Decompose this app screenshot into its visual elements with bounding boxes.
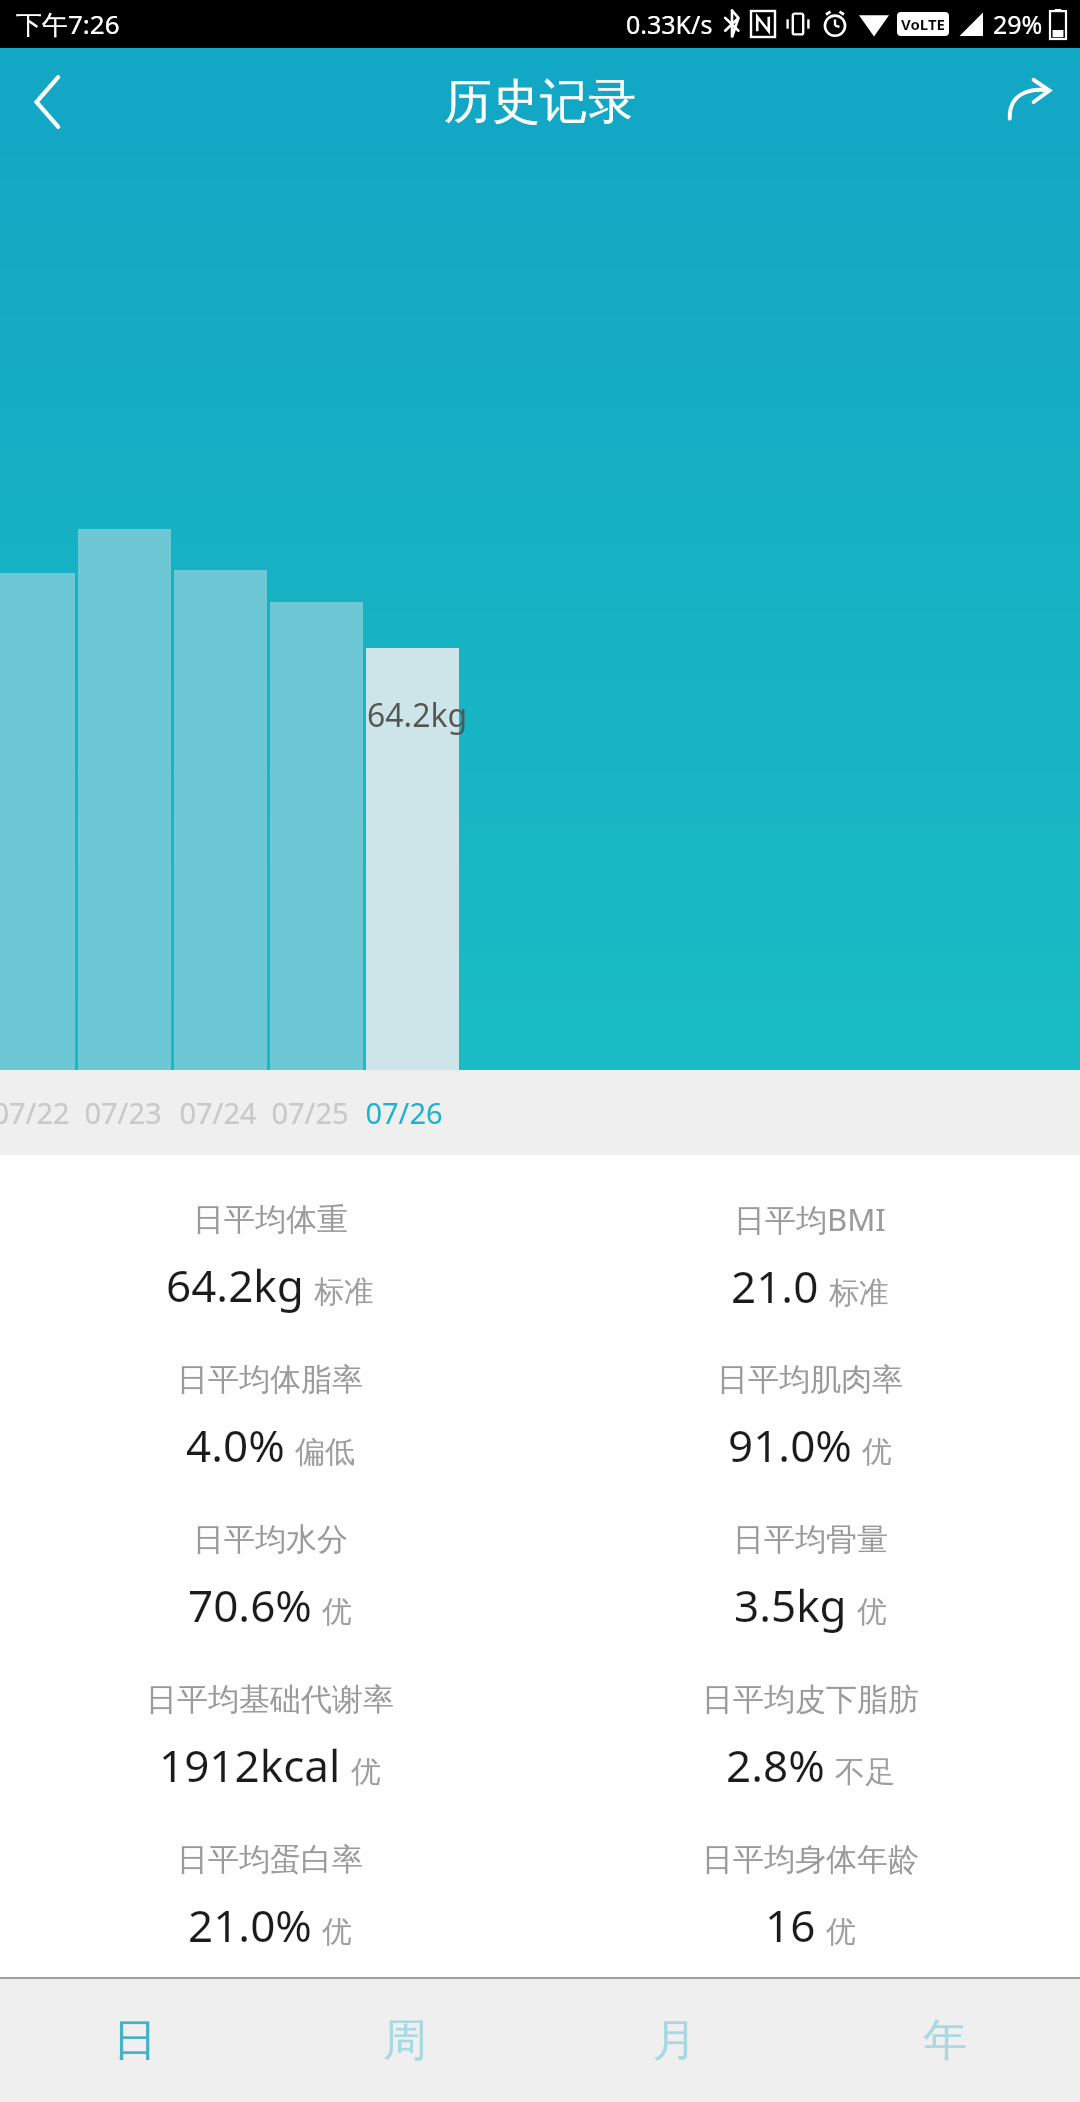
staticText: 64.2kg <box>367 693 468 737</box>
button[interactable]: Back <box>0 54 96 150</box>
staticText: 日平均肌肉率 <box>717 1360 903 1399</box>
staticText: 优 <box>351 1753 381 1791</box>
staticText: 1912kcal <box>159 1735 341 1795</box>
staticText: 月 <box>653 2013 697 2068</box>
button[interactable]: 日平均皮下脂肪 <box>540 1657 1080 1817</box>
staticText: 3.5kg <box>734 1575 847 1635</box>
button[interactable]: 日平均体脂率 <box>0 1337 540 1497</box>
staticText: 70.6% <box>188 1575 312 1635</box>
staticText: 日平均体脂率 <box>177 1360 363 1399</box>
staticText: 0.33K/s <box>626 7 713 41</box>
button[interactable]: 月 <box>540 1979 810 2102</box>
button[interactable]: 日平均肌肉率 <box>540 1337 1080 1497</box>
staticText: 21.0 <box>731 1256 819 1316</box>
staticText: 日平均水分 <box>193 1520 348 1559</box>
staticText: 07/22 <box>0 1093 70 1132</box>
staticText: 64.2kg <box>166 1255 304 1315</box>
staticText: 周 <box>383 2013 427 2068</box>
staticText: 16 <box>765 1895 816 1955</box>
staticText: 91.0% <box>728 1415 852 1475</box>
button[interactable]: 07/25 <box>264 1070 356 1155</box>
staticText: 历史记录 <box>444 72 636 132</box>
button[interactable]: 日平均水分 <box>0 1497 540 1657</box>
staticText: 07/25 <box>271 1093 349 1132</box>
staticText: 标准 <box>829 1274 889 1312</box>
button[interactable]: 日平均蛋白率 <box>0 1817 540 1977</box>
staticText: 不足 <box>835 1753 895 1791</box>
button[interactable]: Share <box>980 52 1080 152</box>
staticText: 日平均骨量 <box>733 1520 888 1559</box>
staticText: 日平均皮下脂肪 <box>702 1680 919 1719</box>
button[interactable]: 07/23 <box>77 1070 169 1155</box>
staticText: 年 <box>923 2013 967 2068</box>
staticText: 29% <box>993 7 1043 41</box>
staticText: 21.0% <box>188 1895 312 1955</box>
staticText: 下午7:26 <box>16 6 120 42</box>
staticText: 优 <box>826 1913 856 1951</box>
button[interactable]: 07/24 <box>172 1070 264 1155</box>
staticText: 优 <box>322 1913 352 1951</box>
button[interactable]: 07/22 <box>0 1070 77 1155</box>
staticText: 偏低 <box>295 1433 355 1471</box>
button[interactable]: 日平均骨量 <box>540 1497 1080 1657</box>
staticText: 日平均蛋白率 <box>177 1840 363 1879</box>
button[interactable]: 日平均基础代谢率 <box>0 1657 540 1817</box>
staticText: 优 <box>862 1433 892 1471</box>
button[interactable]: 07/26 <box>358 1070 450 1155</box>
staticText: 标准 <box>314 1273 374 1311</box>
staticText: 2.8% <box>726 1735 825 1795</box>
button[interactable]: 周 <box>270 1979 540 2102</box>
button[interactable]: 日平均身体年龄 <box>540 1817 1080 1977</box>
staticText: 4.0% <box>186 1415 285 1475</box>
staticText: 日平均体重 <box>193 1200 348 1239</box>
button[interactable]: 日平均体重 <box>0 1177 540 1337</box>
staticText: 优 <box>857 1593 887 1631</box>
staticText: 优 <box>322 1593 352 1631</box>
staticText: 07/24 <box>179 1093 257 1132</box>
button[interactable]: 日平均BMI <box>540 1177 1080 1337</box>
staticText: 07/26 <box>365 1093 443 1132</box>
staticText: 日 <box>113 2013 157 2068</box>
staticText: 日平均基础代谢率 <box>146 1680 394 1719</box>
staticText: 07/23 <box>84 1093 162 1132</box>
button[interactable]: 日 <box>0 1979 270 2102</box>
button[interactable]: 年 <box>810 1979 1080 2102</box>
staticText: 日平均BMI <box>734 1198 886 1240</box>
staticText: VoLTE <box>901 14 945 34</box>
staticText: 日平均身体年龄 <box>702 1840 919 1879</box>
